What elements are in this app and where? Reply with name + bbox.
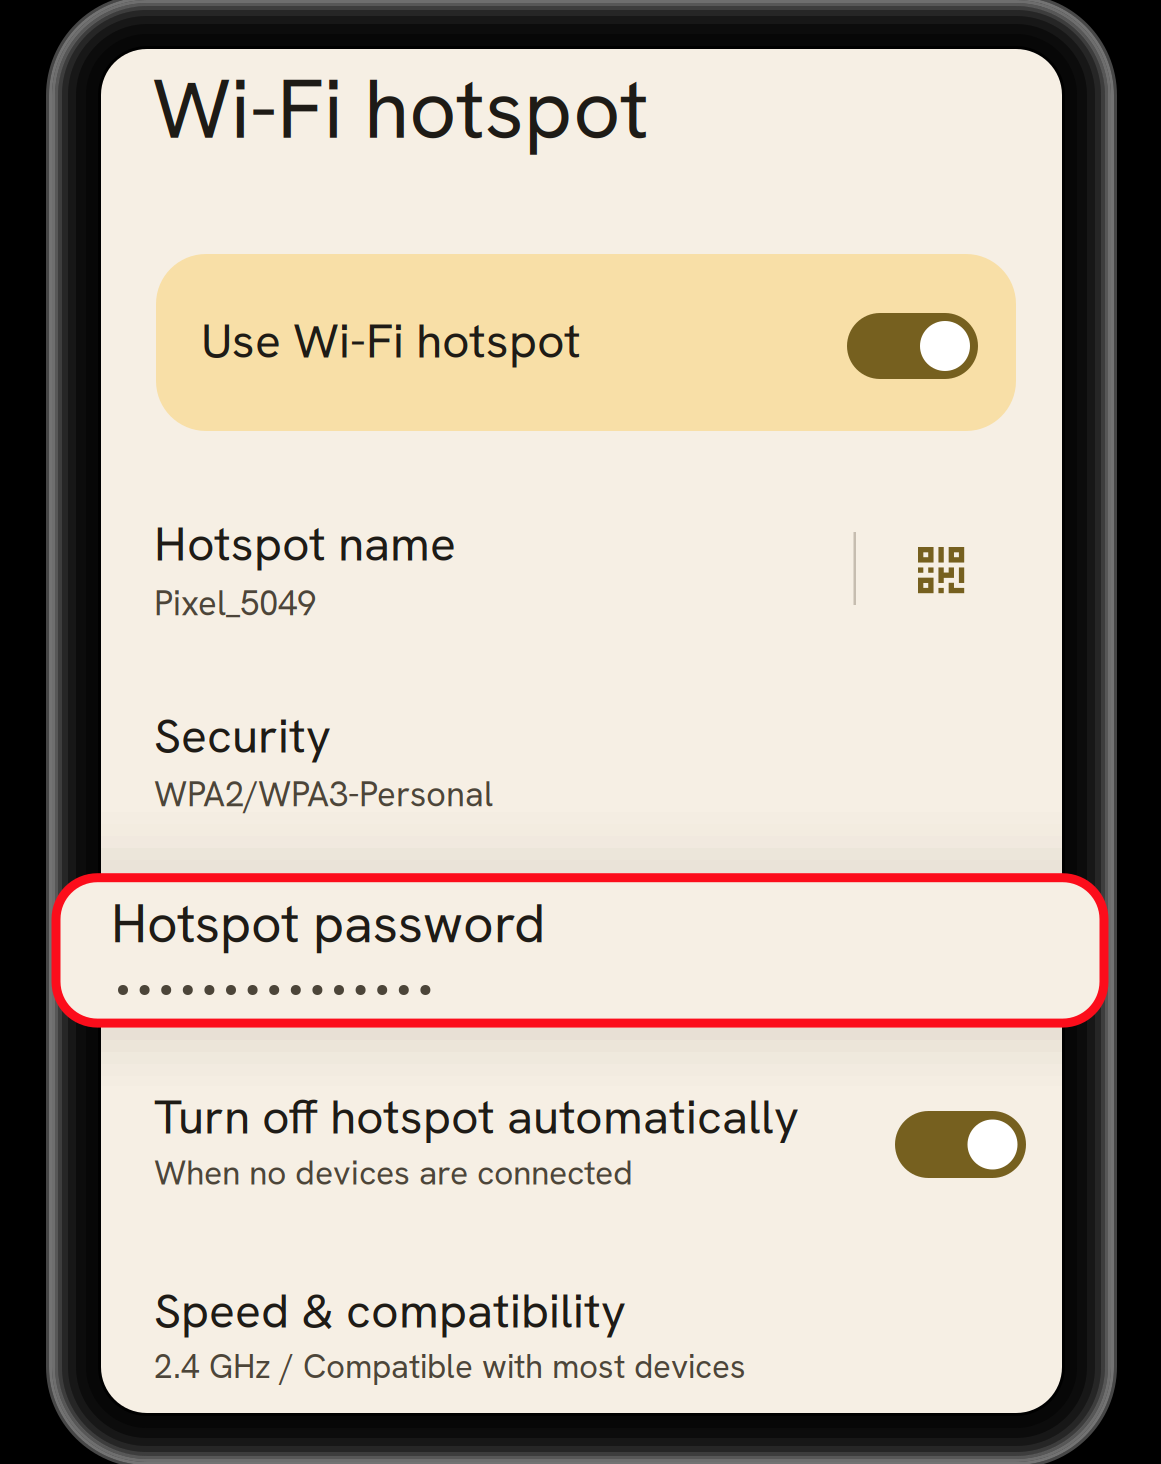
button[interactable]: Hotspot password (56, 878, 1104, 1023)
button[interactable]: Turn off hotspot automatically (140, 1076, 1020, 1214)
button[interactable]: Share hotspot QR code (871, 505, 1011, 635)
staticText: Use Wi-Fi hotspot (201, 309, 581, 372)
staticText: Speed & compatibility (154, 1279, 626, 1342)
button[interactable]: Use Wi-Fi hotspot (156, 254, 1016, 431)
button[interactable]: Security (140, 694, 1020, 839)
staticText: Pixel_5049 (154, 580, 316, 626)
staticText: When no devices are connected (154, 1151, 633, 1195)
staticText: WPA2/WPA3-Personal (154, 771, 493, 817)
staticText: Turn off hotspot automatically (154, 1085, 799, 1148)
staticText: Hotspot password (111, 889, 545, 958)
button[interactable]: Speed & compatibility (140, 1270, 1020, 1410)
staticText: Security (154, 704, 331, 767)
staticText: Wi-Fi hotspot (152, 55, 649, 163)
staticText: Hotspot name (154, 512, 456, 575)
staticText: 2.4 GHz / Compatible with most devices (154, 1345, 746, 1388)
button[interactable]: Hotspot name (140, 500, 840, 645)
